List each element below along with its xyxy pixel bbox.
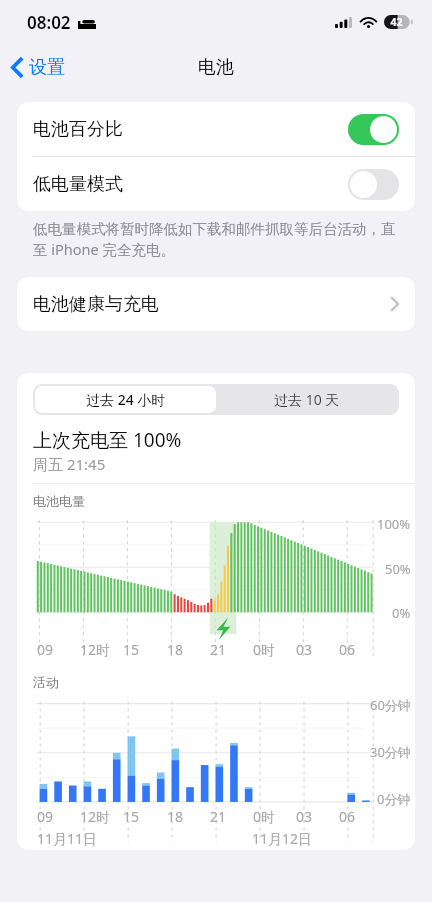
button[interactable]: 电池百分比 bbox=[17, 102, 415, 156]
staticText: 0分钟 bbox=[377, 790, 411, 808]
staticText: 15 bbox=[123, 807, 140, 826]
staticText: 21 bbox=[210, 640, 227, 659]
staticText: 过去 10 天 bbox=[274, 390, 340, 409]
staticText: 06 bbox=[339, 807, 356, 826]
staticText: 09 bbox=[37, 807, 54, 826]
staticText: 11月11日 bbox=[37, 829, 98, 848]
staticText: 12时 bbox=[80, 807, 111, 826]
staticText: 11月12日 bbox=[252, 829, 313, 848]
staticText: 15 bbox=[123, 640, 140, 659]
button[interactable]: 低电量模式 bbox=[17, 157, 415, 211]
staticText: 42 bbox=[384, 15, 409, 29]
staticText: 0时 bbox=[253, 807, 276, 826]
staticText: 18 bbox=[167, 640, 184, 659]
button[interactable]: 过去 10 天 bbox=[216, 386, 397, 413]
staticText: 电池百分比 bbox=[33, 118, 348, 141]
staticText: 0时 bbox=[253, 640, 276, 659]
staticText: 过去 24 小时 bbox=[86, 390, 166, 409]
staticText: 周五 21:45 bbox=[33, 454, 106, 474]
staticText: 电池健康与充电 bbox=[33, 293, 390, 316]
staticText: 活动 bbox=[33, 674, 59, 690]
staticText: 08:02 bbox=[27, 11, 71, 34]
staticText: 18 bbox=[167, 807, 184, 826]
button[interactable]: 低电量模式 bbox=[348, 169, 399, 200]
staticText: 03 bbox=[296, 807, 313, 826]
staticText: 低电量模式将暂时降低如下载和邮件抓取等后台活动，直至 iPhone 完全充电。 bbox=[33, 220, 406, 260]
staticText: 09 bbox=[37, 640, 54, 659]
staticText: 电池电量 bbox=[33, 493, 85, 509]
staticText: 12时 bbox=[80, 640, 111, 659]
staticText: 21 bbox=[210, 807, 227, 826]
staticText: 低电量模式 bbox=[33, 173, 348, 196]
staticText: 电池 bbox=[198, 56, 234, 79]
button[interactable]: 电池健康与充电 bbox=[17, 277, 415, 331]
staticText: 上次充电至 100% bbox=[33, 427, 182, 453]
staticText: 06 bbox=[339, 640, 356, 659]
button[interactable]: 过去 24 小时 bbox=[35, 386, 216, 413]
staticText: 60分钟 bbox=[370, 696, 411, 714]
staticText: 30分钟 bbox=[370, 743, 411, 761]
staticText: 100% bbox=[377, 515, 411, 533]
button[interactable]: 设置 bbox=[0, 50, 76, 85]
staticText: 50% bbox=[385, 560, 411, 578]
button[interactable]: 电池百分比 bbox=[348, 114, 399, 145]
staticText: 设置 bbox=[29, 56, 65, 79]
staticText: 0% bbox=[392, 604, 411, 622]
staticText: 03 bbox=[296, 640, 313, 659]
